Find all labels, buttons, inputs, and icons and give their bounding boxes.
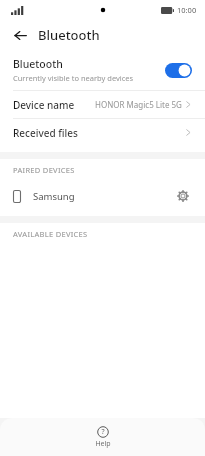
staticText: Bluetooth xyxy=(13,57,63,71)
button[interactable]: Bluetooth toggle xyxy=(165,63,192,78)
staticText: PAIRED DEVICES xyxy=(13,165,75,175)
button[interactable]: Bluetooth xyxy=(0,50,205,90)
staticText: Device name xyxy=(13,98,75,112)
staticText: Bluetooth xyxy=(38,26,100,44)
button[interactable]: Help xyxy=(79,424,127,451)
staticText: Currently visible to nearby devices xyxy=(13,73,134,83)
staticText: Samsung xyxy=(33,190,75,203)
staticText: Received files xyxy=(13,126,78,140)
button[interactable]: Received files xyxy=(0,119,205,146)
staticText: ? xyxy=(101,427,105,437)
staticText: HONOR Magic5 Lite 5G xyxy=(95,99,182,110)
button[interactable]: Device settings xyxy=(174,187,192,205)
button[interactable]: Back xyxy=(8,23,32,47)
button[interactable]: Samsung xyxy=(0,181,205,211)
staticText: 10:00 xyxy=(177,5,197,15)
staticText: Help xyxy=(95,439,111,449)
staticText: AVAILABLE DEVICES xyxy=(13,229,88,239)
button[interactable]: Device name xyxy=(0,91,205,118)
